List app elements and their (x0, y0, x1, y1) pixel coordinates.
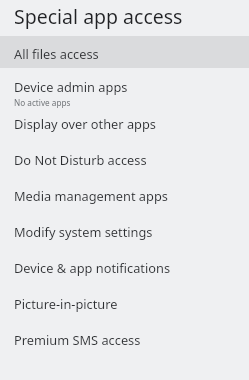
staticText: Display over other apps (14, 115, 156, 132)
staticText: No active apps (14, 97, 71, 108)
staticText: Media management apps (14, 187, 168, 204)
button[interactable]: All files access (0, 36, 249, 68)
staticText: Premium SMS access (14, 331, 141, 348)
button[interactable]: Do Not Disturb access (0, 144, 249, 180)
staticText: Device & app notifications (14, 259, 171, 276)
staticText: Do Not Disturb access (14, 151, 147, 168)
button[interactable]: Premium SMS access (0, 324, 249, 360)
staticText: Picture-in-picture (14, 295, 118, 312)
staticText: Modify system settings (14, 223, 153, 240)
button[interactable]: Device admin apps (0, 72, 249, 108)
button[interactable]: Modify system settings (0, 216, 249, 252)
staticText: Device admin apps (14, 78, 128, 95)
staticText: All files access (14, 45, 99, 62)
button[interactable]: Picture-in-picture (0, 288, 249, 324)
button[interactable]: Display over other apps (0, 108, 249, 144)
staticText: Special app access (14, 3, 183, 30)
button[interactable]: Device & app notifications (0, 252, 249, 288)
button[interactable]: Media management apps (0, 180, 249, 216)
